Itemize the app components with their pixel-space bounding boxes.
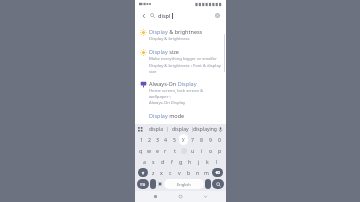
staticText: q — [139, 147, 143, 154]
staticText: 6 — [182, 136, 185, 143]
button[interactable]: Back — [139, 11, 148, 20]
button[interactable] — [179, 146, 188, 155]
staticText: Home screen, lock screen & wallpaper › — [149, 88, 221, 99]
staticText: l — [216, 158, 218, 165]
button[interactable]: 6 — [179, 135, 188, 144]
staticText: o — [209, 147, 213, 154]
button[interactable]: Recents — [151, 192, 160, 201]
button[interactable]: w — [145, 146, 153, 155]
staticText: c — [169, 169, 172, 176]
button[interactable]: e — [153, 146, 161, 155]
button[interactable]: m — [202, 168, 211, 177]
button[interactable]: displaying — [193, 126, 217, 133]
staticText: y — [182, 136, 185, 143]
staticText: Display size — [149, 48, 179, 55]
staticText: 4 — [164, 136, 167, 143]
staticText: Display mode — [149, 112, 185, 119]
button[interactable]: 1 — [137, 135, 145, 144]
staticText: t — [174, 147, 176, 154]
staticText: 3 — [156, 136, 159, 143]
staticText: Display & brightness — [149, 28, 203, 35]
button[interactable]: x — [157, 168, 166, 177]
button[interactable]: b — [184, 168, 193, 177]
staticText: w — [147, 147, 152, 154]
button[interactable]: 0 — [215, 135, 224, 144]
button[interactable]: !?# — [137, 179, 149, 189]
button[interactable]: Clear — [213, 11, 222, 20]
staticText: 8 — [200, 136, 203, 143]
staticText: u — [191, 147, 195, 154]
button[interactable]: 7 — [188, 135, 197, 144]
staticText: Display & brightness — [149, 36, 190, 42]
button[interactable]: Home — [176, 192, 185, 201]
button[interactable]: 3 — [153, 135, 161, 144]
staticText: m — [204, 169, 209, 176]
button[interactable]: g — [176, 157, 185, 166]
staticText: v — [178, 169, 181, 176]
button[interactable]: 8 — [197, 135, 206, 144]
staticText: displaying — [193, 126, 217, 133]
button[interactable]: z — [149, 168, 157, 177]
staticText: i — [201, 147, 203, 154]
button[interactable]: v — [175, 168, 184, 177]
staticText: s — [152, 158, 155, 165]
button[interactable]: display — [168, 126, 192, 133]
staticText: 0 — [218, 136, 221, 143]
button[interactable]: q — [137, 146, 145, 155]
staticText: 5 — [173, 136, 176, 143]
button[interactable]: 4 — [161, 135, 170, 144]
button[interactable]: Display size — [135, 45, 226, 77]
staticText: !?# — [140, 182, 146, 187]
button[interactable]: c — [166, 168, 175, 177]
button[interactable]: Period — [205, 179, 211, 189]
button[interactable]: displa — [144, 126, 167, 133]
button[interactable]: f — [167, 157, 176, 166]
button[interactable]: j — [194, 157, 203, 166]
button[interactable]: Display & brightness — [135, 25, 226, 45]
button[interactable]: h — [185, 157, 194, 166]
button[interactable]: d — [158, 157, 167, 166]
button[interactable]: Always-On Display — [135, 77, 226, 109]
staticText: n — [196, 169, 200, 176]
staticText: display — [172, 126, 189, 133]
button[interactable]: 2 — [145, 135, 153, 144]
button[interactable]: 5 — [170, 135, 179, 144]
staticText: 2 — [148, 136, 151, 143]
staticText: displa — [149, 126, 163, 133]
button[interactable]: k — [203, 157, 212, 166]
staticText: p — [218, 147, 222, 154]
button[interactable]: a — [140, 157, 149, 166]
button[interactable]: o — [206, 146, 215, 155]
staticText: k — [206, 158, 209, 165]
button[interactable]: 9 — [206, 135, 215, 144]
button[interactable]: Settings — [157, 181, 163, 187]
button[interactable]: i — [197, 146, 206, 155]
button[interactable]: Shift — [138, 168, 148, 177]
button[interactable]: s — [149, 157, 158, 166]
staticText: English — [177, 182, 191, 187]
staticText: Always-On Display — [149, 100, 186, 106]
staticText: b — [187, 169, 191, 176]
button[interactable]: t — [170, 146, 179, 155]
button[interactable]: Keyboard menu — [137, 126, 144, 133]
button[interactable]: Voice input — [217, 126, 224, 133]
button[interactable]: Search — [212, 179, 224, 189]
button[interactable]: l — [212, 157, 221, 166]
button[interactable]: English — [164, 179, 204, 189]
staticText: Display & brightness › Font & display si… — [149, 63, 221, 74]
button[interactable]: Display mode — [135, 109, 226, 124]
button[interactable]: Emoji — [150, 179, 156, 189]
staticText: j — [198, 158, 200, 165]
staticText: 1 — [140, 136, 143, 143]
staticText: 7 — [191, 136, 194, 143]
button[interactable]: Back — [201, 192, 210, 201]
button[interactable]: n — [193, 168, 202, 177]
staticText: a — [143, 158, 146, 165]
button[interactable]: r — [161, 146, 170, 155]
staticText: 9 — [209, 136, 212, 143]
button[interactable]: Backspace — [212, 168, 223, 177]
button[interactable]: u — [188, 146, 197, 155]
button[interactable]: p — [215, 146, 224, 155]
staticText: e — [156, 147, 159, 154]
staticText: r — [164, 147, 167, 154]
